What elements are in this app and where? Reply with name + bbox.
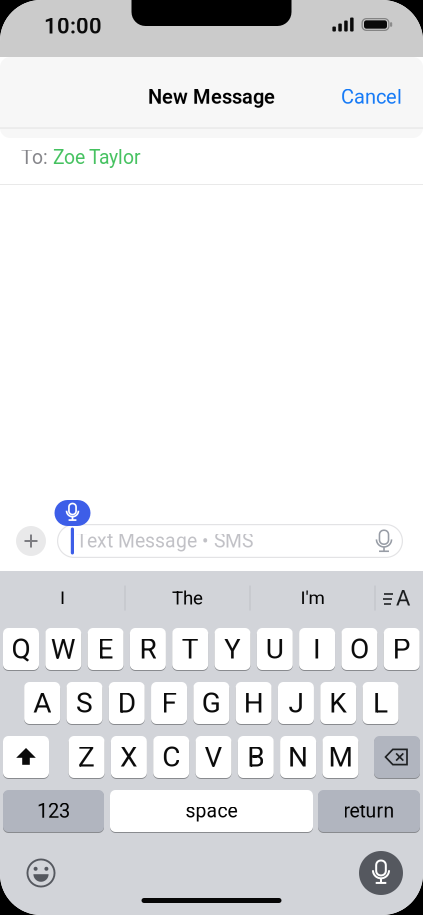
button[interactable]: P [384, 627, 420, 670]
button[interactable]: D [109, 681, 145, 724]
staticText: A [396, 585, 410, 611]
button[interactable]: Y [214, 627, 250, 670]
staticText: Z [78, 741, 95, 773]
staticText: A [33, 687, 51, 719]
button[interactable]: Cancel [312, 75, 402, 119]
button[interactable]: Z [69, 735, 105, 778]
button[interactable]: U [257, 627, 293, 670]
button[interactable]: T [172, 627, 208, 670]
button[interactable]: R [130, 627, 166, 670]
button[interactable]: F [151, 681, 187, 724]
button[interactable]: To: [21, 130, 423, 185]
staticText: Y [224, 633, 241, 665]
staticText: space [185, 800, 237, 822]
staticText: S [76, 687, 93, 719]
staticText: X [120, 741, 138, 773]
button[interactable]: 123 [3, 789, 104, 832]
staticText: 10:00 [44, 13, 102, 39]
staticText: The [172, 587, 203, 609]
staticText: Text Message • SMS [76, 530, 253, 552]
button[interactable]: Q [3, 627, 39, 670]
staticText: J [288, 687, 303, 719]
button[interactable]: K [320, 681, 356, 724]
staticText: D [118, 687, 136, 719]
staticText: V [204, 741, 222, 773]
button[interactable]: X [111, 735, 147, 778]
staticText: U [266, 633, 284, 665]
staticText: To: [21, 146, 48, 169]
button[interactable] [16, 526, 46, 556]
staticText: O [350, 633, 369, 665]
button[interactable] [359, 851, 403, 895]
staticText: New Message [148, 85, 275, 109]
button[interactable] [3, 735, 49, 778]
button[interactable] [24, 856, 58, 890]
staticText: K [329, 687, 347, 719]
button[interactable]: S [66, 681, 102, 724]
button[interactable]: M [322, 735, 358, 778]
staticText: I [60, 587, 65, 609]
staticText: R [139, 633, 156, 665]
button[interactable]: N [280, 735, 316, 778]
staticText: W [51, 633, 76, 665]
staticText: M [328, 741, 352, 773]
staticText: Cancel [341, 85, 402, 109]
staticText: return [343, 800, 394, 822]
button[interactable]: V [195, 735, 231, 778]
button[interactable] [374, 735, 420, 778]
button[interactable]: I [2, 575, 122, 621]
staticText: C [162, 741, 180, 773]
button[interactable]: C [153, 735, 189, 778]
button[interactable]: return [318, 789, 420, 832]
button[interactable]: I'm [252, 575, 372, 621]
staticText: I'm [300, 587, 324, 609]
button[interactable]: E [88, 627, 124, 670]
button[interactable] [54, 500, 90, 526]
staticText: E [98, 633, 114, 665]
button[interactable]: L [362, 681, 398, 724]
button[interactable]: J [278, 681, 314, 724]
button[interactable]: A [377, 575, 417, 621]
button[interactable]: O [341, 627, 377, 670]
staticText: P [393, 633, 411, 665]
staticText: I [313, 633, 321, 665]
staticText: G [202, 687, 221, 719]
button[interactable]: space [110, 789, 313, 832]
staticText: Q [11, 633, 30, 665]
staticText: H [244, 687, 264, 719]
staticText: T [182, 633, 199, 665]
button[interactable]: W [45, 627, 81, 670]
button[interactable]: B [238, 735, 274, 778]
staticText: F [161, 687, 176, 719]
staticText: 123 [37, 799, 70, 823]
button[interactable]: G [193, 681, 229, 724]
button[interactable]: The [127, 575, 247, 621]
button[interactable]: A [24, 681, 60, 724]
staticText: N [288, 741, 308, 773]
button[interactable]: I [299, 627, 335, 670]
button[interactable] [57, 524, 403, 558]
button[interactable]: H [236, 681, 272, 724]
staticText: Zoe Taylor [53, 146, 141, 169]
staticText: B [247, 741, 264, 773]
staticText: L [373, 687, 388, 719]
